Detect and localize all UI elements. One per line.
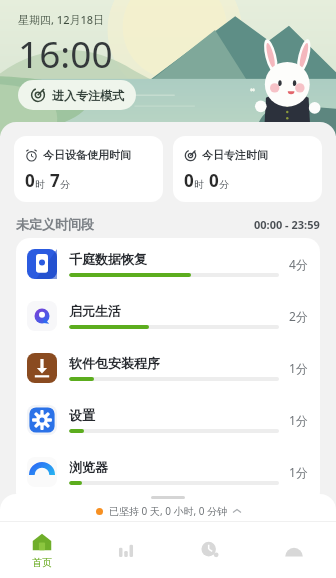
staticText: 软件包安装程序 <box>69 355 160 371</box>
button[interactable]: 今日设备使用时间 <box>14 136 163 202</box>
staticText: 时 <box>35 178 45 191</box>
button[interactable]: 我的 <box>252 522 336 578</box>
button[interactable]: 首页 <box>0 522 84 578</box>
staticText: 浏览器 <box>69 459 108 475</box>
staticText: 千庭数据恢复 <box>69 251 147 267</box>
staticText: 设置 <box>69 407 95 423</box>
staticText: 4分 <box>289 256 308 272</box>
staticText: 今日设备使用时间 <box>43 148 131 162</box>
button[interactable]: 浏览器 <box>16 446 320 498</box>
button[interactable]: 启元生活 <box>16 290 320 342</box>
button[interactable]: 已坚持 0 天, 0 小时, 0 分钟 <box>0 501 336 521</box>
staticText: 7 <box>50 169 60 192</box>
staticText: 进入专注模式 <box>52 88 124 103</box>
staticText: 星期四, 12月18日 <box>18 12 105 27</box>
staticText: 未定义时间段 <box>16 216 94 232</box>
staticText: 分 <box>219 178 229 191</box>
staticText: 已坚持 0 天, 0 小时, 0 分钟 <box>109 504 228 518</box>
staticText: 0 <box>25 169 35 192</box>
staticText: 1分 <box>289 464 308 480</box>
staticText: 时 <box>194 178 204 191</box>
staticText: 今日专注时间 <box>202 148 268 162</box>
staticText: 1分 <box>289 412 308 428</box>
staticText: 00:00 - 23:59 <box>254 217 320 232</box>
staticText: 16:00 <box>18 28 113 78</box>
staticText: 启元生活 <box>69 303 121 319</box>
staticText: 分 <box>60 178 70 191</box>
button[interactable]: 设置 <box>16 394 320 446</box>
button[interactable]: 今日专注时间 <box>173 136 322 202</box>
button[interactable]: 统计 <box>84 522 168 578</box>
button[interactable]: 千庭数据恢复 <box>16 238 320 290</box>
staticText: 首页 <box>32 556 52 569</box>
staticText: 0 <box>209 169 219 192</box>
button[interactable]: 软件包安装程序 <box>16 342 320 394</box>
button[interactable]: 进入专注模式 <box>18 80 136 110</box>
staticText: 1分 <box>289 360 308 376</box>
button[interactable]: 时间管理 <box>168 522 252 578</box>
staticText: 2分 <box>289 308 308 324</box>
staticText: 0 <box>184 169 194 192</box>
